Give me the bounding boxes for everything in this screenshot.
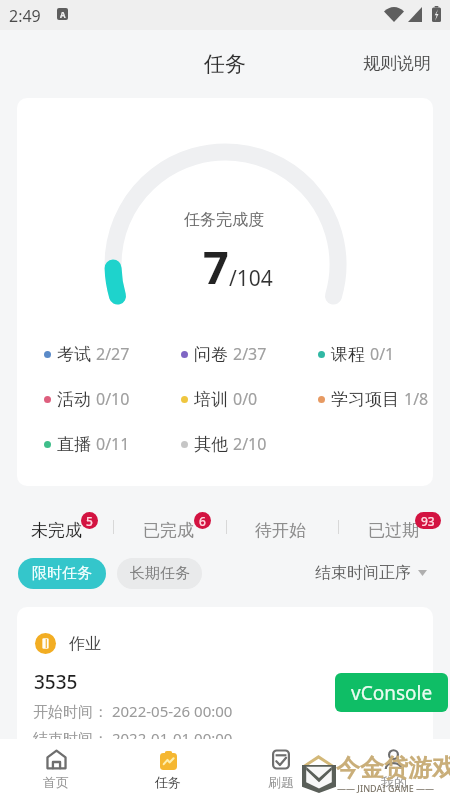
button[interactable]: 刷题 [224,739,337,800]
staticText: 6 [199,513,206,529]
staticText: 培训 [194,389,228,410]
button[interactable]: 已过期 [345,509,441,545]
button[interactable]: 待开始 [232,509,328,545]
staticText: 结束时间： 2022-01-01 00:00 [33,728,233,748]
staticText: 长期任务 [130,564,190,583]
staticText: 直播 [57,434,91,455]
staticText: 开始时间： 2022-05-26 00:00 [33,701,233,721]
staticText: 任务 [204,51,246,77]
staticText: 刷题 [268,774,294,790]
staticText: 学习项目 [331,389,399,410]
button[interactable]: 已完成 [120,509,216,545]
staticText: 其他 [194,434,228,455]
staticText: 课程 [331,344,365,365]
staticText: 结束时间正序 [315,563,411,583]
button[interactable]: vConsole [335,673,448,712]
staticText: —— JINDAI GAME —— [337,782,434,794]
staticText: 2:49 [9,5,41,27]
staticText: 2/37 [233,343,267,365]
staticText: A [60,9,66,20]
staticText: 限时任务 [32,564,92,583]
staticText: 规则说明 [363,53,431,74]
other: 任务 [160,749,177,770]
other: 刷题 [272,749,290,770]
other: 我的 [383,749,404,770]
staticText: 5 [86,513,93,529]
staticText: 我的 [381,774,407,790]
staticText: 作业 [69,634,101,654]
button[interactable]: 结束时间正序 [315,563,427,583]
staticText: 已完成 [143,520,194,541]
button[interactable]: 作业 [17,607,433,767]
staticText: 1/8 [404,388,429,410]
staticText: 问卷 [194,344,228,365]
staticText: 93 [421,513,435,529]
button[interactable]: 规则说明 [349,44,445,83]
staticText: 0/0 [233,388,258,410]
button[interactable]: 首页 [0,739,112,800]
staticText: 2/27 [96,343,130,365]
button[interactable]: 限时任务 [18,558,106,589]
staticText: 任务完成度 [184,210,264,230]
button[interactable]: 未完成 [8,509,104,545]
staticText: 2/10 [233,433,267,455]
staticText: /104 [229,264,273,293]
staticText: 0/1 [370,343,395,365]
staticText: 今金贷游戏 [336,753,450,783]
staticText: 0/11 [96,433,130,455]
staticText: 3535 [34,669,78,695]
staticText: 考试 [57,344,91,365]
staticText: 已过期 [368,520,419,541]
button[interactable]: 长期任务 [117,558,202,589]
staticText: 待开始 [255,520,306,541]
staticText: 任务 [155,774,181,790]
staticText: 活动 [57,389,91,410]
staticText: 7 [203,236,229,297]
staticText: 0/10 [96,388,130,410]
staticText: 未完成 [31,520,82,541]
button[interactable]: 任务 [112,739,224,800]
staticText: vConsole [351,680,433,706]
other: 首页 [46,749,67,770]
button[interactable]: 我的 [337,739,450,800]
staticText: 首页 [43,774,69,790]
